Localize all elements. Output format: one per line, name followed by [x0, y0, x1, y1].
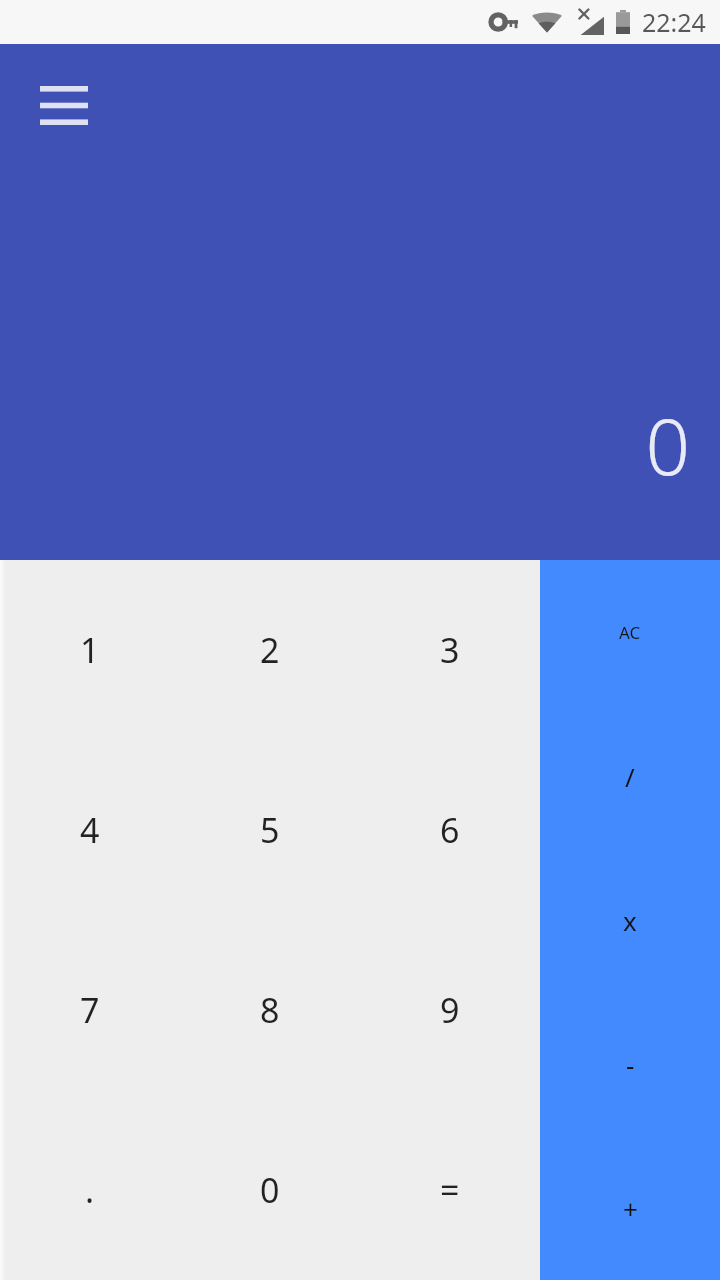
staticText: +: [623, 1191, 638, 1226]
staticText: 22:24: [642, 5, 706, 39]
staticText: 5: [260, 807, 280, 853]
button[interactable]: 0: [180, 1100, 360, 1280]
button[interactable]: .: [0, 1100, 180, 1280]
button[interactable]: 9: [360, 920, 540, 1100]
staticText: 1: [80, 627, 100, 673]
staticText: .: [85, 1167, 95, 1213]
staticText: x: [623, 903, 637, 938]
staticText: 3: [440, 627, 460, 673]
staticText: 2: [260, 627, 280, 673]
staticText: 4: [80, 807, 100, 853]
button[interactable]: 3: [360, 560, 540, 740]
button[interactable]: +: [540, 1136, 720, 1280]
staticText: 0: [260, 1167, 280, 1213]
button[interactable]: 6: [360, 740, 540, 920]
button[interactable]: -: [540, 992, 720, 1136]
button[interactable]: /: [540, 704, 720, 848]
staticText: =: [440, 1167, 460, 1213]
staticText: AC: [619, 621, 641, 644]
button[interactable]: x: [540, 848, 720, 992]
button[interactable]: =: [360, 1100, 540, 1280]
button[interactable]: 5: [180, 740, 360, 920]
button[interactable]: 1: [0, 560, 180, 740]
staticText: 0: [645, 392, 690, 498]
staticText: 7: [80, 987, 100, 1033]
staticText: /: [625, 759, 635, 794]
staticText: -: [626, 1047, 635, 1082]
staticText: 9: [440, 987, 460, 1033]
button[interactable]: 2: [180, 560, 360, 740]
button[interactable]: 8: [180, 920, 360, 1100]
button[interactable]: 4: [0, 740, 180, 920]
staticText: 8: [260, 987, 280, 1033]
staticText: 6: [440, 807, 460, 853]
button[interactable]: AC: [540, 560, 720, 704]
button[interactable]: 7: [0, 920, 180, 1100]
button[interactable]: Open navigation menu: [24, 70, 104, 140]
